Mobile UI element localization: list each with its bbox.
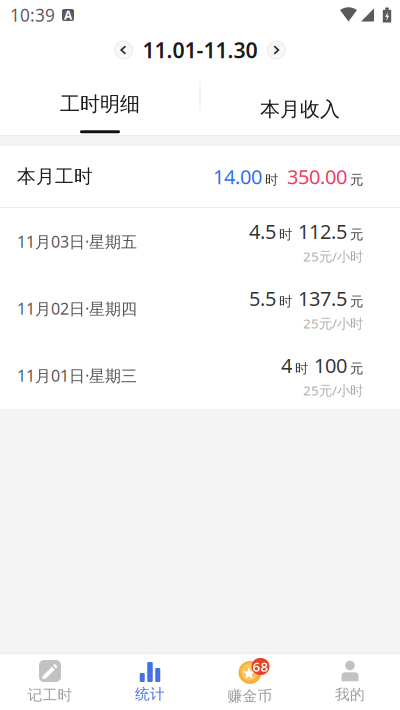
staticText: 14.00 — [213, 163, 262, 190]
staticText: 统计 — [135, 685, 165, 703]
button[interactable]: 11月01日·星期三 — [0, 342, 400, 409]
staticText: 112.5 — [298, 218, 347, 244]
staticText: 25元/小时 — [303, 381, 363, 399]
staticText: 时 — [295, 360, 308, 377]
staticText: 100 — [314, 352, 347, 378]
staticText: 赚金币 — [227, 687, 272, 705]
staticText: 工时明细 — [60, 92, 140, 116]
staticText: 5.5 — [249, 285, 276, 311]
button[interactable]: 工时明细 — [0, 70, 200, 136]
staticText: 时 — [265, 172, 278, 188]
staticText: 元 — [350, 360, 363, 377]
staticText: 时 — [279, 293, 292, 310]
button[interactable]: 11月03日·星期五 — [0, 208, 400, 275]
button[interactable]: 11月02日·星期四 — [0, 275, 400, 342]
staticText: 本月工时 — [17, 165, 93, 188]
staticText: 4.5 — [249, 218, 276, 244]
button[interactable]: 统计 — [100, 653, 200, 709]
staticText: A — [64, 7, 72, 23]
staticText: 4 — [281, 352, 292, 378]
button[interactable]: Next month — [263, 37, 289, 63]
staticText: 我的 — [335, 685, 365, 703]
staticText: 350.00 — [287, 163, 347, 190]
staticText: 25元/小时 — [303, 247, 363, 265]
staticText: 记工时 — [27, 686, 72, 704]
staticText: 11月01日·星期三 — [17, 365, 137, 386]
button[interactable]: 68 — [200, 653, 300, 709]
staticText: 元 — [350, 293, 363, 310]
staticText: 11月02日·星期四 — [17, 298, 137, 319]
staticText: 137.5 — [298, 285, 347, 311]
staticText: 元 — [350, 172, 363, 188]
staticText: 11.01-11.30 — [142, 36, 257, 64]
button[interactable]: Previous month — [110, 37, 136, 63]
staticText: 时 — [279, 226, 292, 243]
button[interactable]: 我的 — [300, 653, 400, 709]
button[interactable]: 记工时 — [0, 653, 100, 709]
button[interactable]: 本月收入 — [200, 70, 400, 136]
staticText: 25元/小时 — [303, 314, 363, 332]
staticText: 11月03日·星期五 — [17, 231, 137, 252]
staticText: 10:39 — [10, 3, 55, 26]
staticText: 68 — [252, 658, 268, 675]
staticText: 元 — [350, 226, 363, 243]
staticText: 本月收入 — [260, 97, 340, 122]
